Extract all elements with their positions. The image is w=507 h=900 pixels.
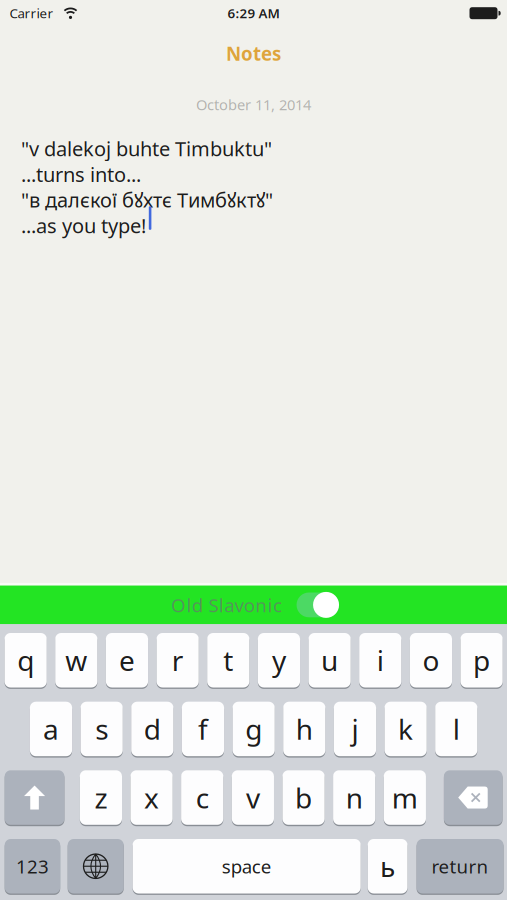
button[interactable]: c [181, 770, 223, 825]
button[interactable]: Next keyboard [68, 839, 124, 893]
button[interactable]: u [308, 633, 351, 687]
staticText: 123 [16, 854, 49, 879]
staticText: ...turns into... [21, 161, 141, 187]
button[interactable]: y [258, 633, 300, 687]
staticText: 6:29 AM [227, 4, 279, 22]
button[interactable]: s [81, 702, 123, 756]
staticText: l [453, 710, 460, 748]
staticText: p [473, 642, 490, 679]
button[interactable]: i [359, 633, 401, 687]
staticText: z [94, 779, 107, 816]
button[interactable]: k [384, 702, 427, 756]
staticText: "v dalekoj buhte Timbuktu" [21, 135, 272, 162]
staticText: t [223, 642, 233, 679]
staticText: g [245, 710, 262, 748]
button[interactable]: f [182, 702, 224, 756]
staticText: Notes [226, 41, 281, 66]
staticText: v [246, 779, 260, 816]
button[interactable]: d [131, 702, 173, 756]
staticText: u [321, 642, 338, 679]
staticText: return [432, 854, 489, 879]
button[interactable]: w [55, 633, 97, 687]
button[interactable]: space [133, 839, 361, 893]
staticText: f [198, 710, 208, 748]
staticText: w [65, 642, 87, 679]
button[interactable]: r [156, 633, 199, 687]
button[interactable]: l [435, 702, 477, 756]
button[interactable]: b [282, 770, 325, 825]
button[interactable]: o [410, 633, 452, 687]
staticText: n [346, 779, 363, 816]
staticText: o [422, 642, 439, 679]
button[interactable]: n [333, 770, 375, 825]
staticText: "в далєкої бꙋхтє Тимбꙋктꙋ" [21, 186, 273, 213]
staticText: s [95, 710, 108, 748]
staticText: Old Slavonic [171, 593, 282, 617]
staticText: October 11, 2014 [196, 95, 311, 114]
staticText: b [295, 779, 312, 816]
button[interactable]: Delete [444, 770, 502, 825]
button[interactable]: Shift [5, 770, 64, 825]
button[interactable]: ь [368, 839, 407, 893]
button[interactable]: j [334, 702, 376, 756]
staticText: h [296, 710, 313, 748]
button[interactable]: x [130, 770, 173, 825]
staticText: a [43, 710, 59, 748]
button[interactable]: e [106, 633, 148, 687]
staticText: k [398, 710, 413, 748]
staticText: space [222, 854, 272, 879]
staticText: x [144, 779, 159, 816]
staticText: y [272, 642, 286, 679]
staticText: m [392, 779, 418, 816]
staticText: j [351, 710, 358, 748]
staticText: r [172, 642, 184, 679]
button[interactable]: t [207, 633, 249, 687]
staticText: q [17, 642, 34, 679]
button[interactable]: 123 [5, 839, 60, 893]
button[interactable]: g [232, 702, 275, 756]
staticText: d [144, 710, 161, 748]
staticText: e [119, 642, 135, 679]
staticText: ь [380, 848, 395, 885]
staticText: c [196, 779, 209, 816]
button[interactable]: p [460, 633, 503, 687]
button[interactable]: q [5, 633, 47, 687]
button[interactable]: a [30, 702, 72, 756]
button[interactable]: return [417, 839, 503, 893]
staticText: i [377, 642, 384, 679]
button[interactable]: m [384, 770, 426, 825]
staticText: ...as you type! [21, 212, 146, 239]
button[interactable]: v [232, 770, 274, 825]
staticText: Carrier [9, 4, 53, 22]
button[interactable]: z [80, 770, 122, 825]
button[interactable]: h [283, 702, 325, 756]
button[interactable]: Old Slavonic On [297, 592, 339, 617]
